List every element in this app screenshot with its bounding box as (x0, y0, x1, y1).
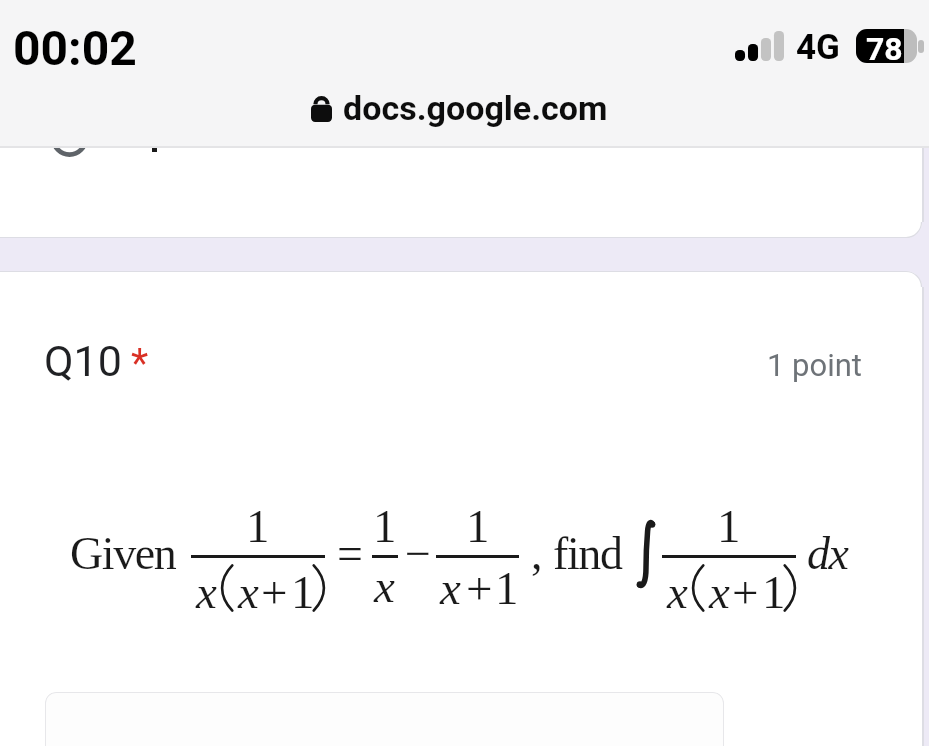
staticText: 1 (291, 566, 314, 618)
staticText: Q10 (44, 336, 122, 386)
staticText: 1 point (767, 347, 862, 383)
staticText: docs.google.com (343, 88, 608, 128)
staticText: 1 (466, 500, 490, 552)
staticText: 78 (866, 30, 903, 63)
button[interactable]: Answer option (44, 112, 744, 164)
staticText: 1 (246, 500, 270, 552)
staticText: 4G (796, 27, 840, 68)
staticText: find (553, 528, 622, 579)
staticText: x (374, 560, 394, 612)
staticText: dx (807, 528, 848, 579)
staticText: x (238, 566, 258, 618)
staticText: = (337, 528, 362, 579)
staticText: 1 (495, 562, 518, 614)
staticText: 1 (762, 566, 785, 618)
staticText: 1 (373, 500, 397, 552)
staticText: − (405, 528, 430, 579)
staticText: * (131, 340, 149, 387)
staticText: x (196, 566, 216, 618)
staticText: + (466, 562, 492, 614)
staticText: , (531, 528, 542, 579)
button[interactable]: Site information, docs.google.com (311, 88, 608, 128)
staticText: + (732, 566, 758, 618)
button[interactable]: Your answer (45, 692, 724, 746)
staticText: + (261, 566, 287, 618)
staticText: x (709, 566, 729, 618)
staticText: x (667, 566, 687, 618)
staticText: x (440, 562, 460, 614)
staticText: 1 (717, 500, 741, 552)
staticText: 00:02 (13, 20, 137, 76)
staticText: Given (70, 528, 176, 579)
